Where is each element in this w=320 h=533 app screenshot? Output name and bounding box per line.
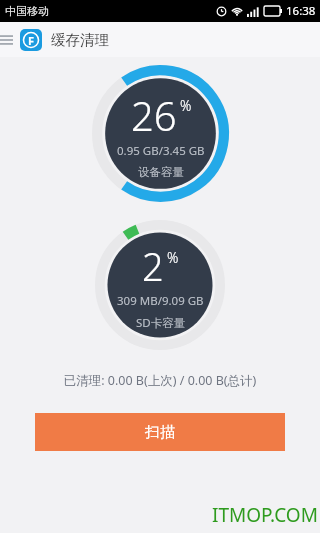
staticText: 0.95 GB/3.45 GB bbox=[117, 143, 205, 159]
staticText: ITMOP.COM bbox=[212, 502, 318, 528]
staticText: 中国移动 bbox=[5, 4, 49, 18]
staticText: F bbox=[28, 33, 35, 48]
staticText: SD卡容量 bbox=[136, 315, 186, 331]
staticText: 缓存清理 bbox=[51, 31, 109, 49]
staticText: 309 MB/9.09 GB bbox=[117, 293, 204, 309]
staticText: 扫描 bbox=[145, 423, 175, 442]
staticText: 2 bbox=[142, 240, 164, 292]
button[interactable]: 扫描 bbox=[35, 413, 285, 451]
button[interactable]: 26 bbox=[92, 65, 229, 202]
staticText: % bbox=[180, 96, 192, 115]
button[interactable]: 2 bbox=[95, 220, 225, 350]
button[interactable]: Menu bbox=[0, 30, 16, 50]
staticText: % bbox=[167, 248, 179, 267]
staticText: 设备容量 bbox=[138, 165, 184, 179]
staticText: 16:38 bbox=[286, 3, 316, 19]
staticText: 已清理: 0.00 B(上次) / 0.00 B(总计) bbox=[0, 372, 320, 389]
staticText: 26 bbox=[131, 88, 177, 142]
